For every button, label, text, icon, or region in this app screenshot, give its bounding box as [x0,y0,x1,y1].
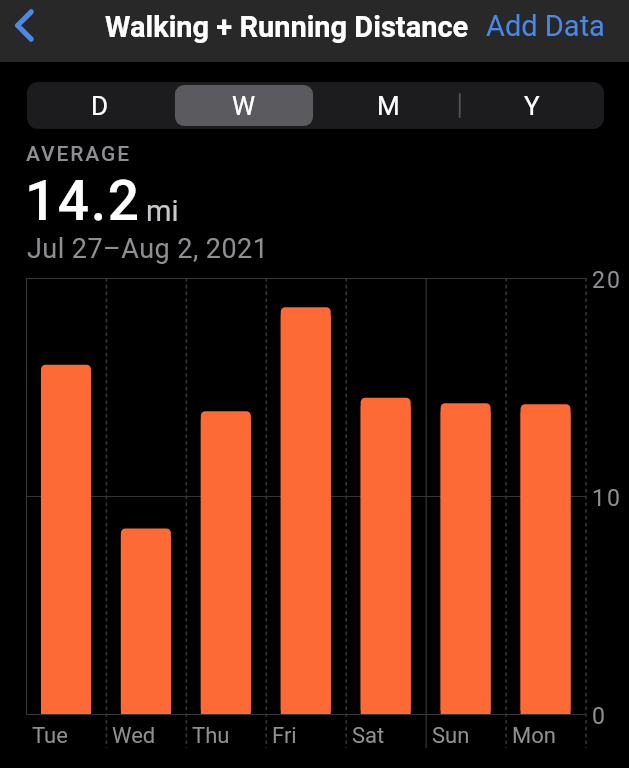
staticText: Y [524,91,540,121]
staticText: Thu [192,723,230,749]
staticText: M [377,91,400,121]
staticText: 20 [592,267,622,294]
button[interactable]: Back [0,8,46,54]
staticText: Walking + Running Distance [105,10,469,44]
staticText: W [232,91,256,121]
staticText: mi [146,194,179,228]
staticText: 10 [592,485,622,512]
button[interactable]: Y [463,85,601,126]
button[interactable]: M [319,85,457,126]
staticText: 14.2 [25,169,141,233]
staticText: Wed [112,723,156,749]
staticText: Mon [512,723,556,749]
staticText: 0 [592,703,607,730]
staticText: Jul 27–Aug 2, 2021 [27,233,269,265]
staticText: Add Data [486,9,605,43]
staticText: Tue [32,723,68,749]
staticText: D [91,91,109,121]
staticText: Sat [352,723,385,749]
button[interactable]: W [175,85,313,126]
button[interactable]: Add Data [472,0,618,62]
staticText: AVERAGE [26,142,132,167]
staticText: Sun [432,723,470,749]
staticText: Fri [272,723,297,749]
button[interactable]: D [30,85,169,126]
